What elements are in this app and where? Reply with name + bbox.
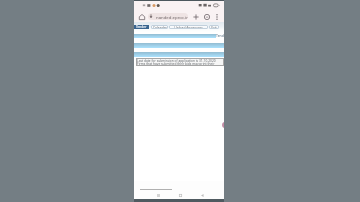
staticText: Firms that have submitted their bids may… — [137, 62, 224, 66]
staticText: Exit — [211, 25, 217, 29]
button[interactable]: Calendar — [151, 25, 168, 29]
staticText: Last date for submission of application … — [137, 59, 216, 63]
button[interactable]: More options — [212, 12, 221, 21]
button[interactable]: Exit — [209, 25, 219, 29]
staticText: Tender — [136, 25, 147, 29]
button[interactable]: Tabs — [202, 12, 211, 21]
staticText: Calendar — [153, 25, 167, 29]
button[interactable]: Upload Annexures Document — [169, 25, 208, 29]
button[interactable]: Recents — [153, 190, 163, 199]
staticText: Tender No — [216, 33, 224, 38]
button[interactable]: Tender — [134, 25, 149, 29]
button[interactable]: Home — [175, 190, 185, 199]
staticText: Upload Annexures Document — [169, 25, 208, 29]
button[interactable]: New tab — [191, 12, 200, 21]
button[interactable]: Chat — [222, 122, 224, 128]
button[interactable]: Home — [137, 12, 146, 21]
button[interactable]: Last date for submission of application … — [136, 58, 224, 66]
button[interactable]: Back — [197, 190, 207, 199]
button[interactable]: nanded.eproc.in — [148, 13, 188, 20]
staticText: nanded.eproc.in — [156, 14, 188, 20]
